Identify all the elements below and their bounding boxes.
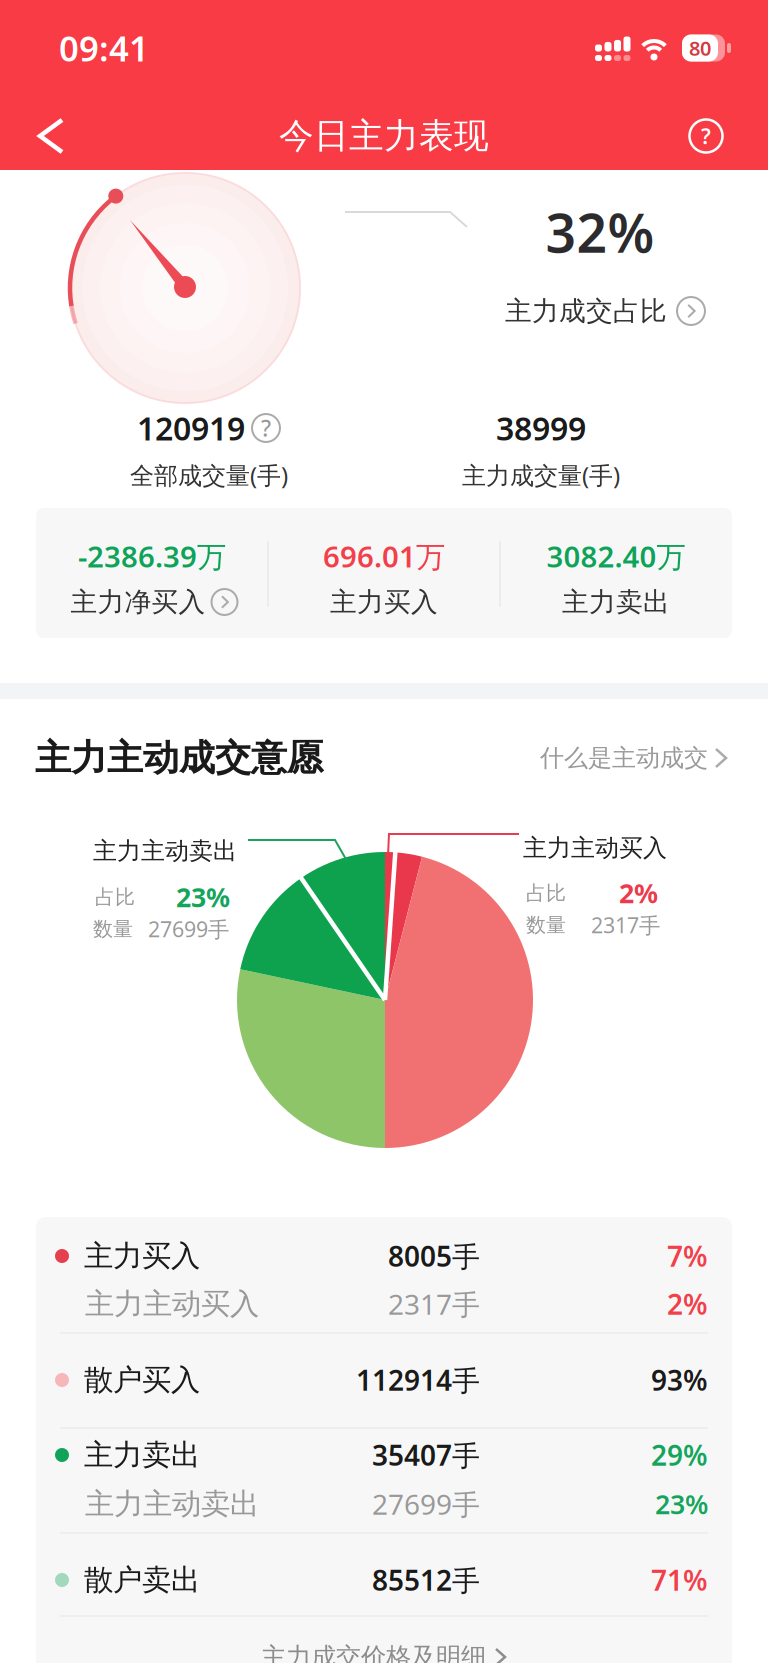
- staticText: 2%: [619, 875, 658, 911]
- staticText: 23%: [176, 879, 230, 915]
- staticText: 主力成交占比: [505, 295, 667, 327]
- staticText: -2386.39万: [78, 536, 226, 575]
- staticText: 主力买入: [84, 1238, 200, 1274]
- staticText: 主力成交量(手): [462, 459, 620, 491]
- staticText: 什么是主动成交: [540, 743, 708, 773]
- staticText: 27699手: [148, 915, 229, 943]
- staticText: 主力主动买入: [85, 1286, 259, 1322]
- staticText: 80: [689, 35, 711, 61]
- staticText: 2317手: [591, 911, 660, 939]
- staticText: 32%: [545, 197, 654, 267]
- staticText: 主力主动卖出: [85, 1486, 259, 1522]
- staticText: 27699手: [372, 1485, 480, 1523]
- staticText: 71%: [651, 1561, 708, 1599]
- staticText: 散户卖出: [84, 1562, 200, 1598]
- staticText: 数量: [526, 913, 566, 937]
- staticText: 7%: [667, 1237, 708, 1275]
- button[interactable]: 主力成交价格及明细: [261, 1641, 507, 1663]
- staticText: 112914手: [356, 1361, 480, 1399]
- staticText: 占比: [526, 881, 566, 905]
- staticText: 占比: [95, 885, 135, 909]
- staticText: 696.01万: [323, 536, 445, 575]
- staticText: 2317手: [388, 1285, 480, 1323]
- staticText: 今日主力表现: [279, 115, 489, 157]
- staticText: 全部成交量(手): [130, 459, 288, 491]
- staticText: 120919: [137, 407, 245, 449]
- button[interactable]: Help: [689, 119, 722, 152]
- staticText: 主力买入: [330, 586, 438, 618]
- staticText: 93%: [651, 1361, 708, 1399]
- staticText: 数量: [93, 917, 133, 941]
- staticText: 85512手: [372, 1561, 480, 1599]
- button[interactable]: 主力净买入: [70, 586, 237, 618]
- staticText: ?: [701, 122, 711, 150]
- staticText: ?: [261, 413, 271, 443]
- staticText: 主力卖出: [562, 586, 670, 618]
- staticText: 3082.40万: [546, 536, 685, 575]
- staticText: 38999: [496, 407, 586, 449]
- staticText: 主力成交价格及明细: [261, 1641, 486, 1663]
- staticText: 2%: [667, 1285, 708, 1323]
- staticText: 8005手: [388, 1237, 480, 1275]
- staticText: 主力净买入: [70, 586, 205, 618]
- staticText: 35407手: [372, 1436, 480, 1474]
- button[interactable]: Back: [28, 112, 76, 160]
- staticText: 主力主动买入: [523, 833, 667, 863]
- staticText: 主力卖出: [84, 1437, 200, 1473]
- staticText: 23%: [655, 1486, 708, 1522]
- staticText: 09:41: [59, 25, 149, 71]
- button[interactable]: 什么是主动成交: [540, 743, 728, 773]
- staticText: 散户买入: [84, 1362, 200, 1398]
- staticText: 29%: [651, 1436, 708, 1474]
- button[interactable]: 主力成交占比: [505, 295, 705, 327]
- staticText: 主力主动成交意愿: [35, 736, 323, 780]
- button[interactable]: 全部成交量说明: [252, 414, 280, 442]
- staticText: 主力主动卖出: [93, 836, 237, 866]
